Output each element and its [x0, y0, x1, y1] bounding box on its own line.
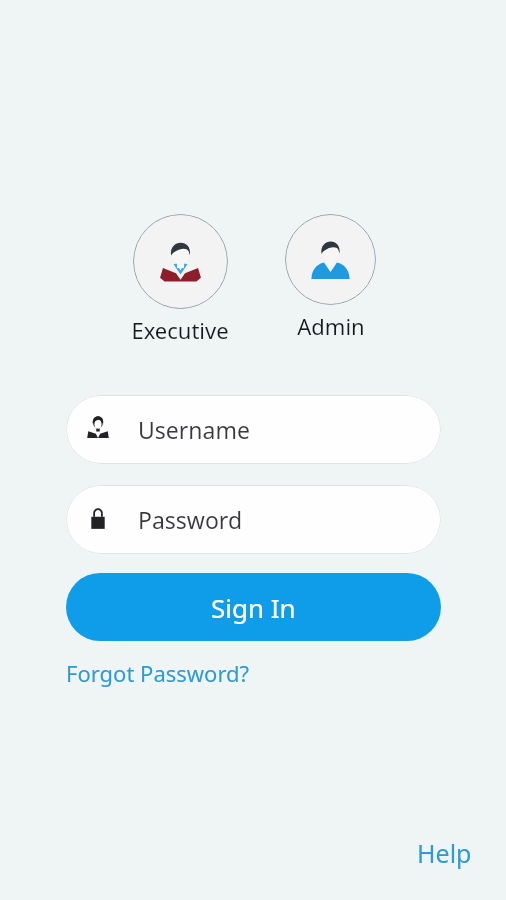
staticText: Username — [138, 414, 250, 445]
other: Username — [80, 412, 116, 448]
staticText: Admin — [297, 311, 365, 341]
button[interactable]: Admin — [283, 214, 378, 341]
staticText: Sign In — [211, 590, 296, 625]
staticText: Forgot Password? — [66, 658, 250, 688]
button[interactable]: Sign In — [66, 573, 441, 641]
button[interactable]: Executive — [129, 214, 231, 345]
button[interactable]: Forgot Password? — [66, 658, 250, 688]
staticText: Password — [138, 504, 243, 535]
button[interactable]: Username — [66, 395, 441, 464]
button[interactable]: Help — [417, 836, 472, 870]
button[interactable]: Password — [66, 485, 441, 554]
staticText: Executive — [131, 315, 229, 345]
staticText: Help — [417, 836, 472, 870]
other: Password — [80, 502, 116, 538]
